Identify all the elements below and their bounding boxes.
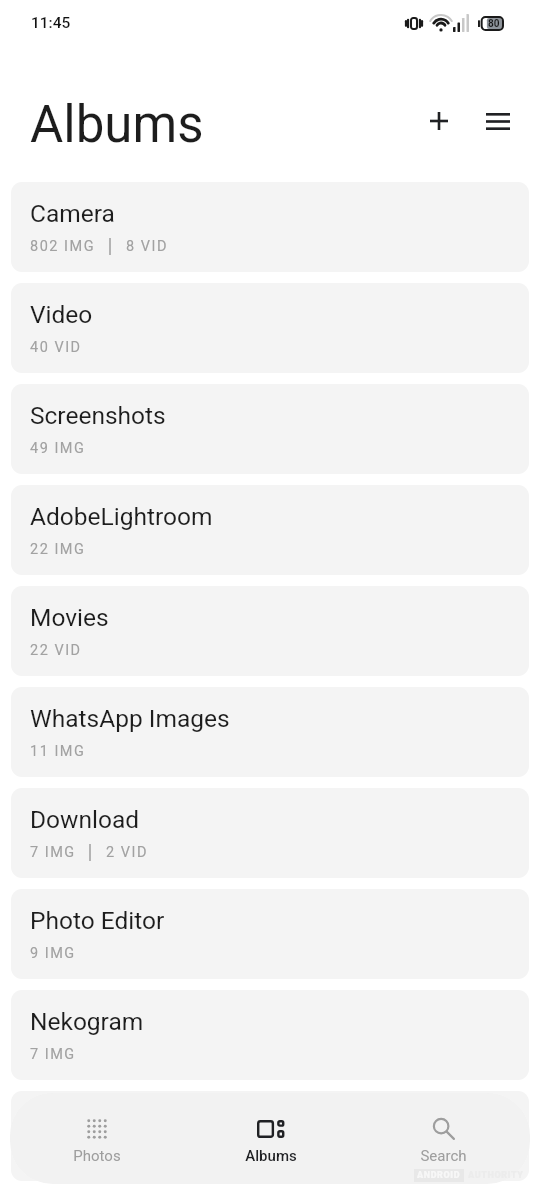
staticText: Albums bbox=[30, 95, 204, 155]
staticText: Movies bbox=[30, 603, 109, 632]
button[interactable]: Download bbox=[11, 788, 529, 878]
button[interactable]: Create album bbox=[411, 93, 467, 149]
staticText: 40 VID bbox=[30, 339, 82, 356]
button[interactable]: Search bbox=[357, 1094, 530, 1183]
staticText: 22 IMG bbox=[30, 541, 86, 558]
button[interactable]: Photo Editor bbox=[11, 889, 529, 979]
button[interactable]: Screenshots bbox=[11, 384, 529, 474]
staticText: 49 IMG bbox=[30, 440, 86, 457]
button[interactable]: More options bbox=[470, 93, 526, 149]
staticText: ANDROID bbox=[417, 1170, 461, 1181]
staticText: Photo Editor bbox=[30, 906, 165, 935]
staticText: Albums bbox=[245, 1147, 297, 1165]
staticText: 3 IMG bbox=[30, 1147, 76, 1164]
staticText: 80 bbox=[488, 18, 500, 30]
staticText: WhatsApp Images bbox=[30, 704, 230, 733]
button[interactable]: Video bbox=[11, 283, 529, 373]
staticText: Search bbox=[420, 1147, 467, 1165]
staticText: 11 IMG bbox=[30, 743, 86, 760]
button[interactable]: Photos bbox=[10, 1094, 184, 1183]
button[interactable]: AdobeLightroom bbox=[11, 485, 529, 575]
button[interactable]: Camera bbox=[11, 182, 529, 272]
staticText: 9 IMG bbox=[30, 945, 76, 962]
staticText: 22 VID bbox=[30, 642, 82, 659]
staticText: Photos bbox=[73, 1147, 121, 1165]
staticText: Download bbox=[30, 805, 140, 834]
staticText: Screenshots bbox=[30, 401, 166, 430]
button[interactable]: Albums bbox=[184, 1094, 357, 1183]
staticText: 7 IMG bbox=[30, 844, 76, 861]
button[interactable]: WhatsApp Images bbox=[11, 687, 529, 777]
staticText: Video bbox=[30, 300, 93, 329]
staticText: 11:45 bbox=[31, 14, 71, 32]
staticText: 8 VID bbox=[126, 238, 168, 255]
staticText: 802 IMG bbox=[30, 238, 96, 255]
staticText: 7 IMG bbox=[30, 1046, 76, 1063]
staticText: AdobeLightroom bbox=[30, 502, 213, 531]
staticText: Camera bbox=[30, 199, 115, 228]
staticText: Telegram bbox=[30, 1108, 132, 1137]
button[interactable]: Nekogram bbox=[11, 990, 529, 1080]
staticText: 2 VID bbox=[106, 844, 148, 861]
button[interactable]: Telegram bbox=[11, 1091, 529, 1181]
button[interactable]: Movies bbox=[11, 586, 529, 676]
staticText: Nekogram bbox=[30, 1007, 144, 1036]
